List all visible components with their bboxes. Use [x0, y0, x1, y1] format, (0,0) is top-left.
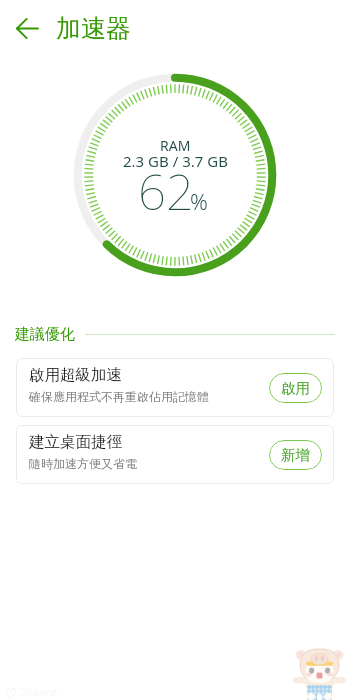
staticText: 新增	[281, 446, 310, 464]
staticText: 建立桌面捷徑	[29, 432, 122, 452]
staticText: RAM	[160, 136, 191, 155]
button[interactable]: 建立桌面捷徑	[16, 425, 334, 484]
staticText: 啟用超級加速	[29, 365, 122, 385]
staticText: 確保應用程式不再重啟佔用記憶體	[29, 389, 209, 404]
staticText: 加速器	[56, 13, 131, 44]
button[interactable]: 啟用超級加速	[16, 358, 334, 417]
staticText: 隨時加速方便又省電	[29, 456, 137, 471]
staticText: 建議優化	[15, 325, 75, 343]
staticText: 2.3 GB / 3.7 GB	[123, 151, 228, 171]
button[interactable]: 新增	[269, 440, 322, 470]
button[interactable]: 啟用	[269, 373, 322, 403]
staticText: %	[190, 186, 208, 216]
button[interactable]: Back	[8, 9, 46, 47]
staticText: 啟用	[281, 379, 310, 397]
staticText: 62	[138, 158, 194, 225]
